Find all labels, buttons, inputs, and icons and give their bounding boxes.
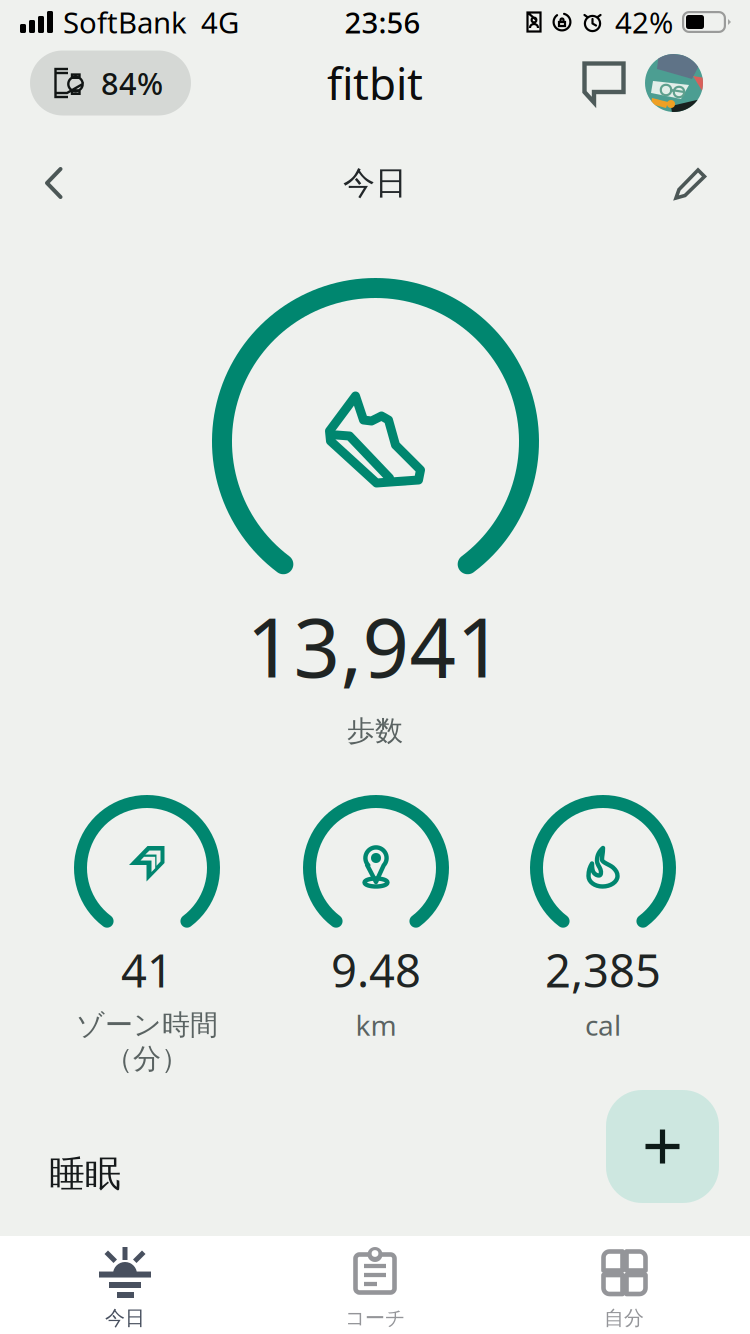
staticText: 自分	[604, 1306, 644, 1330]
staticText: （分）	[105, 1042, 189, 1076]
staticText: cal	[585, 1006, 621, 1044]
staticText: 23:56	[344, 2, 420, 41]
staticText: 41	[121, 940, 173, 1000]
button[interactable]: 2,385	[0, 795, 750, 1085]
button[interactable]: 84%	[30, 50, 191, 115]
staticText: 4G	[201, 2, 239, 41]
staticText: 9.48	[331, 940, 421, 1000]
button[interactable]: Profile	[639, 48, 709, 118]
button[interactable]: Messages	[569, 48, 639, 118]
staticText: 84%	[101, 63, 163, 103]
button[interactable]: 9.48	[0, 795, 750, 1085]
button[interactable]: Add	[606, 1090, 719, 1203]
button[interactable]: 自分	[0, 1236, 750, 1334]
staticText: 13,941	[246, 592, 503, 700]
button[interactable]: 41	[0, 795, 750, 1085]
staticText: 今日	[343, 163, 407, 203]
staticText: 今日	[105, 1306, 145, 1330]
button[interactable]: コーチ	[0, 1236, 750, 1334]
button[interactable]: 今日	[0, 1236, 750, 1334]
staticText: SoftBank	[63, 2, 187, 41]
staticText: 睡眠	[49, 1152, 121, 1196]
staticText: km	[355, 1006, 396, 1044]
staticText: コーチ	[345, 1306, 405, 1330]
staticText: 2,385	[545, 940, 661, 1000]
button[interactable]: Back	[19, 147, 91, 219]
staticText: 歩数	[347, 714, 403, 748]
button[interactable]: Edit	[655, 147, 727, 219]
staticText: 42%	[615, 2, 673, 41]
staticText: fitbit	[327, 54, 423, 112]
staticText: ゾーン時間	[76, 1008, 218, 1042]
